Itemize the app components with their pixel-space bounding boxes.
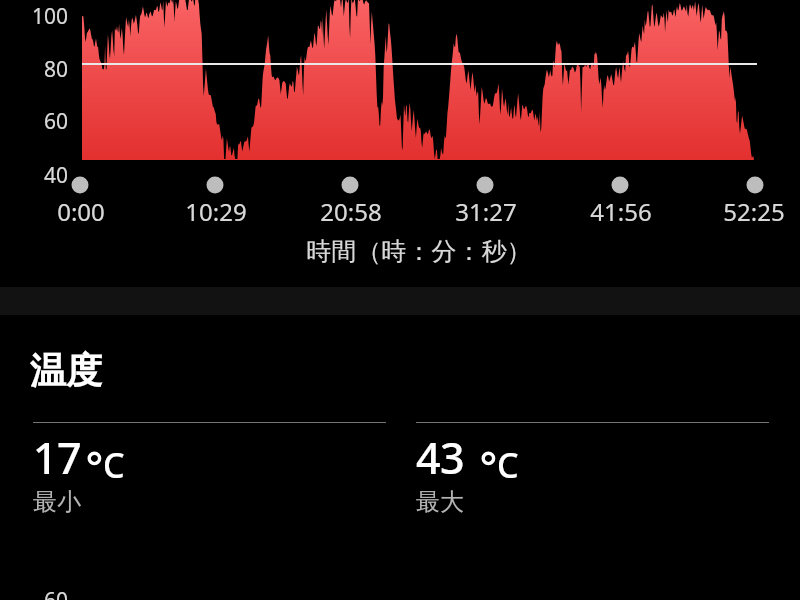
button[interactable]: 43 <box>416 422 769 515</box>
staticText: 最大 <box>416 487 464 517</box>
staticText: 31:27 <box>426 195 546 228</box>
staticText: 60 <box>0 107 68 136</box>
staticText: C <box>103 442 125 488</box>
staticText: 20:58 <box>291 195 411 228</box>
staticText: 0:00 <box>21 195 141 228</box>
staticText: 温度 <box>30 348 102 393</box>
staticText: 10:29 <box>156 195 276 228</box>
staticText: 時間（時：分：秒） <box>19 236 800 267</box>
staticText: 40 <box>0 161 68 190</box>
staticText: 17 <box>33 428 81 487</box>
staticText: C <box>497 442 519 488</box>
staticText: 60 <box>0 586 68 600</box>
staticText: 52:25 <box>694 195 800 228</box>
staticText: 100 <box>0 2 68 31</box>
staticText: 41:56 <box>561 195 681 228</box>
staticText: 最小 <box>33 487 81 517</box>
staticText: 43 <box>416 428 464 487</box>
staticText: 80 <box>0 55 68 84</box>
button[interactable]: 17 <box>33 422 386 515</box>
